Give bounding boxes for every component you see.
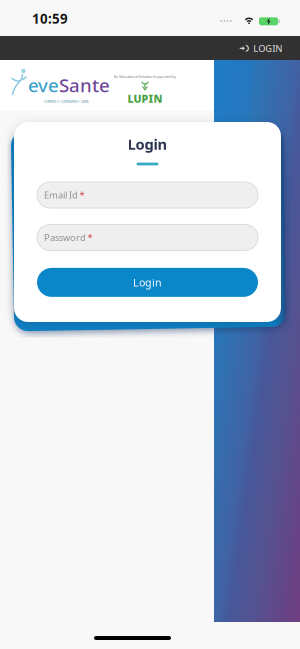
- button[interactable]: Password: [37, 224, 258, 250]
- button[interactable]: Email Id: [37, 182, 258, 208]
- staticText: Sante: [59, 73, 110, 97]
- staticText: Password: [44, 231, 86, 244]
- staticText: eve: [28, 73, 59, 97]
- button[interactable]: LOGIN: [240, 42, 282, 55]
- button[interactable]: Login: [37, 268, 258, 297]
- staticText: An Educational Initiative Supported by: [63, 70, 227, 83]
- staticText: Login: [133, 275, 162, 289]
- staticText: LOGIN: [253, 42, 282, 55]
- staticText: *: [79, 189, 84, 201]
- staticText: 10:59: [32, 10, 68, 27]
- staticText: Login: [127, 134, 167, 154]
- staticText: CORRECT • CONSERVE • CARE: [3, 95, 130, 108]
- staticText: LUPIN: [127, 91, 162, 106]
- staticText: Email Id: [44, 189, 78, 201]
- staticText: *: [87, 231, 92, 244]
